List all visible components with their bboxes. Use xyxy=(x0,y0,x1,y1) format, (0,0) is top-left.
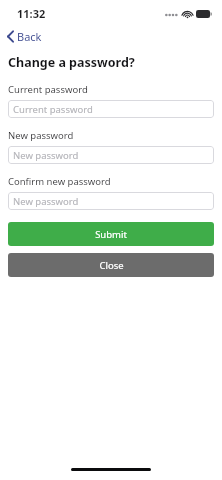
staticText: Change a password? xyxy=(8,54,135,71)
staticText: Back xyxy=(17,29,42,44)
button[interactable]: Submit xyxy=(8,222,214,246)
staticText: Close xyxy=(99,259,124,272)
staticText: New password xyxy=(8,129,74,142)
staticText: Current password xyxy=(13,103,93,116)
staticText: Confirm new password xyxy=(8,175,111,188)
button[interactable]: Close xyxy=(8,253,214,277)
staticText: Submit xyxy=(95,228,127,241)
button[interactable]: Current password xyxy=(8,100,214,118)
button[interactable]: Back xyxy=(0,26,222,46)
staticText: 11:32 xyxy=(17,6,46,21)
button[interactable]: New password xyxy=(8,146,214,164)
staticText: Current password xyxy=(8,83,88,96)
staticText: New password xyxy=(13,195,79,208)
other: Home indicator xyxy=(71,468,151,471)
button[interactable]: New password xyxy=(8,192,214,210)
staticText: New password xyxy=(13,149,79,162)
